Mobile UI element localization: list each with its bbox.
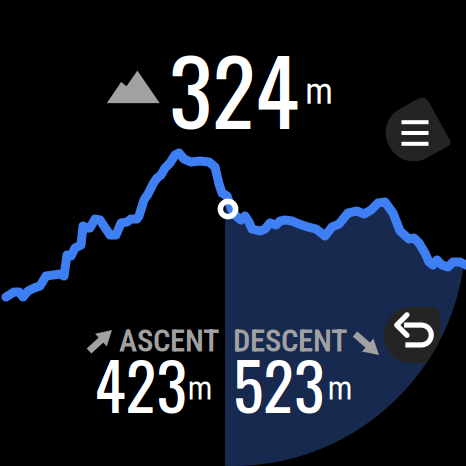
staticText: 324 [169, 21, 299, 155]
staticText: m [187, 368, 212, 408]
button[interactable]: Back [0, 0, 466, 466]
staticText: m [305, 69, 333, 113]
staticText: m [327, 368, 352, 408]
staticText: 523 [233, 337, 325, 431]
button[interactable]: Menu [0, 0, 466, 466]
staticText: 423 [94, 337, 187, 431]
staticText: ASCENT [119, 323, 219, 359]
staticText: DESCENT [233, 323, 347, 359]
